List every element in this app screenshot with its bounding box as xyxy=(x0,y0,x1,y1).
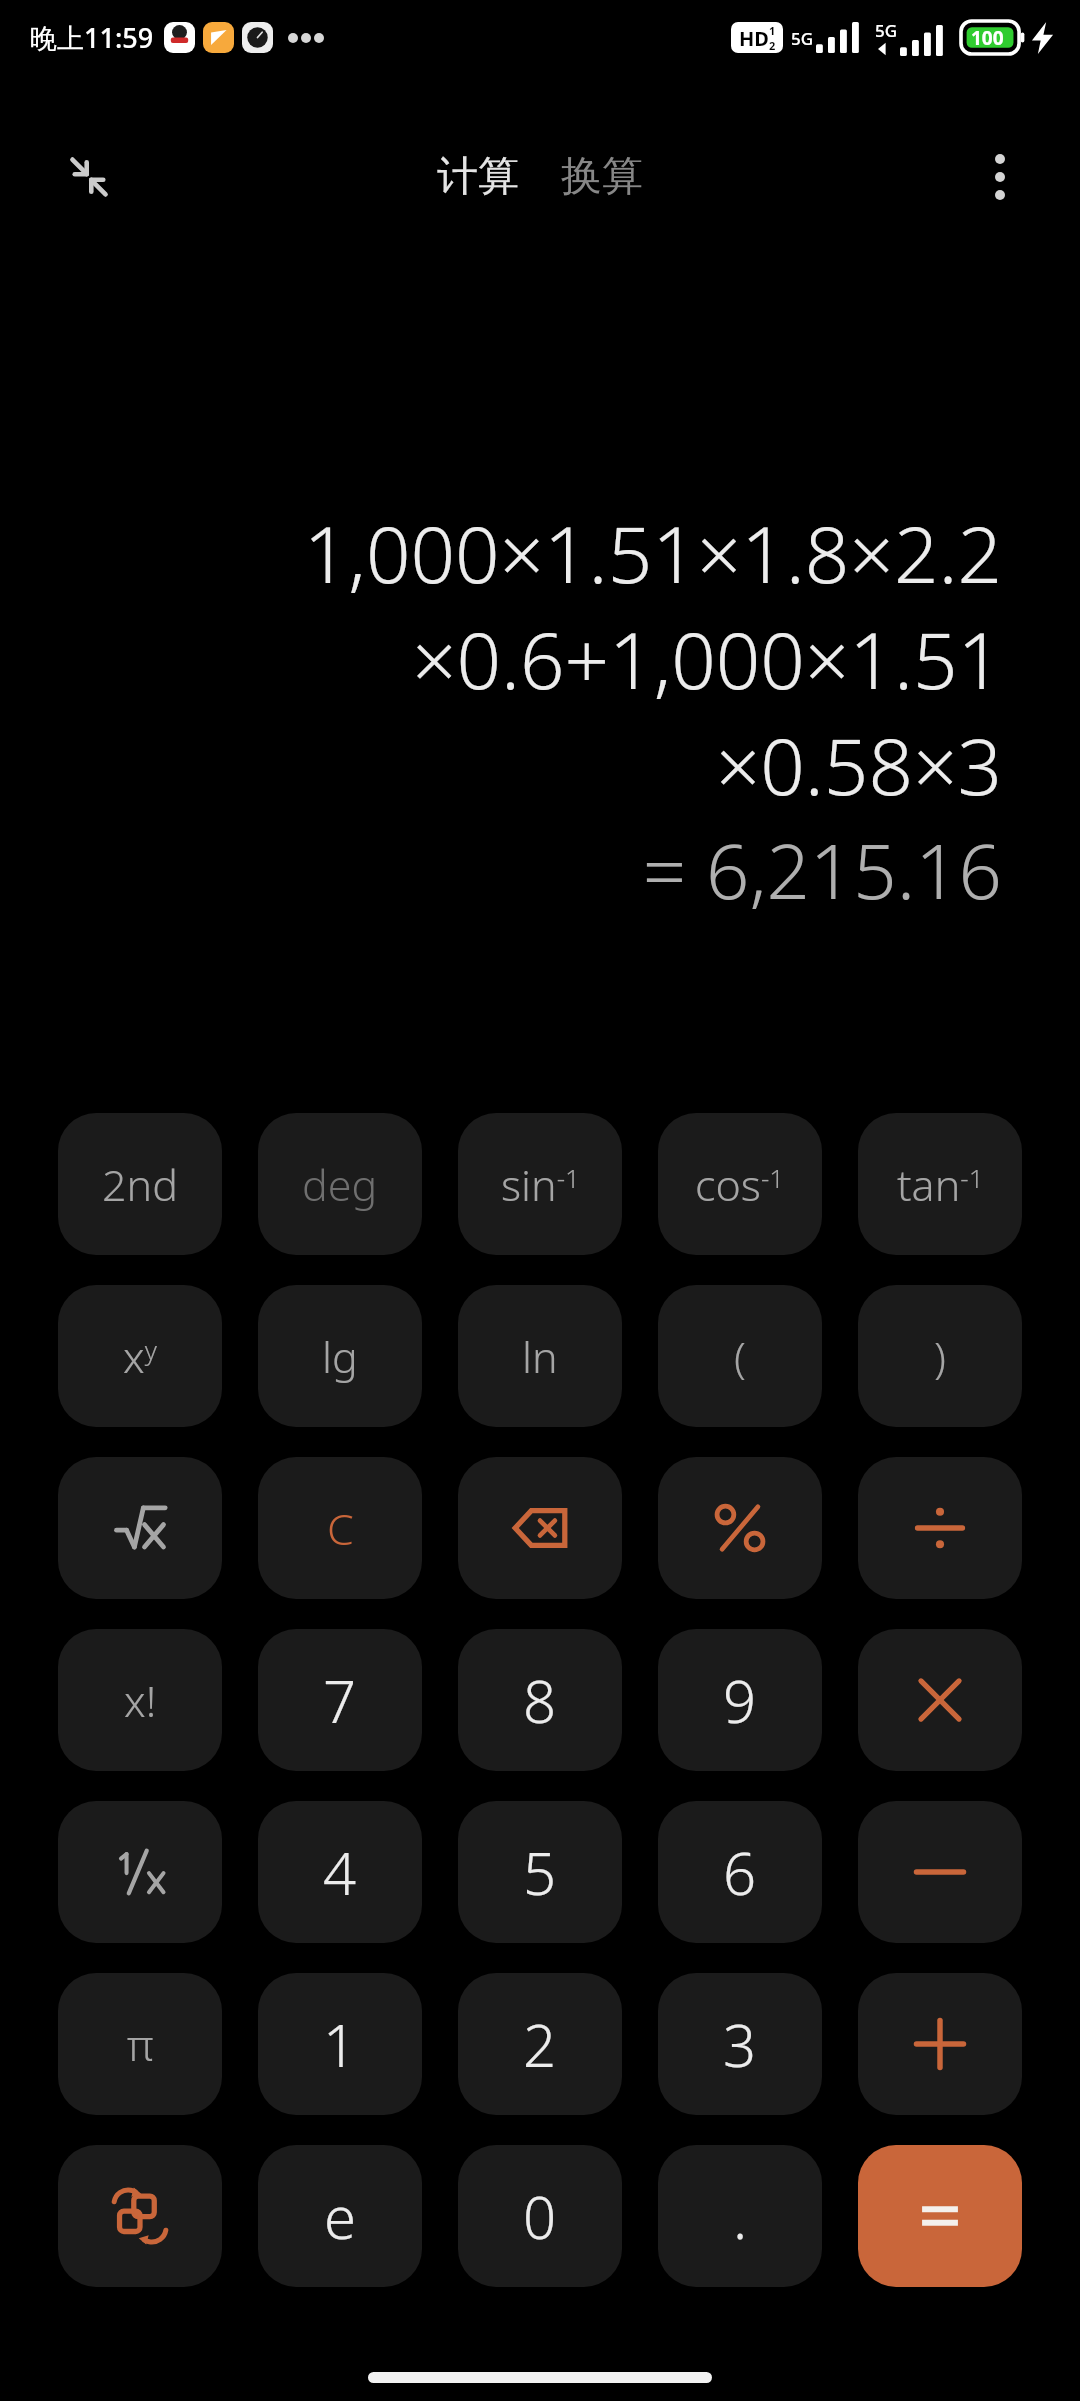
button[interactable]: Multiply xyxy=(858,1629,1022,1771)
staticText: 100 xyxy=(971,25,1004,51)
button[interactable]: sin-1 xyxy=(458,1113,622,1255)
button[interactable]: cos-1 xyxy=(658,1113,822,1255)
staticText: 6 xyxy=(723,1833,757,1912)
button[interactable]: Square root xyxy=(58,1457,222,1599)
button[interactable]: 计算 xyxy=(421,141,535,213)
staticText: e xyxy=(324,2177,357,2256)
button[interactable]: 5 xyxy=(458,1801,622,1943)
button[interactable]: Convert xyxy=(58,2145,222,2287)
staticText: π xyxy=(127,2015,154,2074)
staticText: x! xyxy=(124,1671,157,1730)
button[interactable]: Divide xyxy=(858,1457,1022,1599)
button[interactable]: ln xyxy=(458,1285,622,1427)
button[interactable]: 6 xyxy=(658,1801,822,1943)
staticText: ×0.58×3 xyxy=(715,712,1002,818)
staticText: 计算 xyxy=(437,151,519,203)
staticText: 1 xyxy=(769,23,776,38)
staticText: 8 xyxy=(523,1661,557,1740)
staticText: 0 xyxy=(523,2177,557,2256)
button[interactable]: 2 xyxy=(458,1973,622,2115)
staticText: 5 xyxy=(523,1833,557,1912)
button[interactable]: Backspace xyxy=(458,1457,622,1599)
button[interactable]: 2nd xyxy=(58,1113,222,1255)
button[interactable]: 7 xyxy=(258,1629,422,1771)
staticText: 2nd xyxy=(102,1155,178,1214)
staticText: ) xyxy=(934,1327,946,1386)
button[interactable]: 8 xyxy=(458,1629,622,1771)
button[interactable]: Collapse xyxy=(52,140,126,214)
staticText: 2 xyxy=(769,38,776,53)
staticText: cos-1 xyxy=(695,1155,785,1214)
button[interactable]: 0 xyxy=(458,2145,622,2287)
staticText: C xyxy=(327,1499,354,1558)
staticText: 3 xyxy=(723,2005,757,2084)
staticText: 5G xyxy=(875,19,898,42)
button[interactable]: Plus xyxy=(858,1973,1022,2115)
button[interactable]: 1 xyxy=(258,1973,422,2115)
button[interactable]: lg xyxy=(258,1285,422,1427)
button[interactable]: . xyxy=(658,2145,822,2287)
staticText: = 6,215.16 xyxy=(642,818,1002,922)
button[interactable]: deg xyxy=(258,1113,422,1255)
staticText: tan-1 xyxy=(897,1155,984,1214)
button[interactable]: 9 xyxy=(658,1629,822,1771)
button[interactable]: e xyxy=(258,2145,422,2287)
staticText: xy xyxy=(123,1327,157,1386)
button[interactable]: More options xyxy=(964,141,1036,213)
button[interactable]: Percent xyxy=(658,1457,822,1599)
button[interactable]: Minus xyxy=(858,1801,1022,1943)
staticText: 晚上11:59 xyxy=(30,19,154,56)
button[interactable]: Equals xyxy=(858,2145,1022,2287)
button[interactable]: tan-1 xyxy=(858,1113,1022,1255)
staticText: 7 xyxy=(323,1661,357,1740)
staticText: ( xyxy=(734,1327,746,1386)
button[interactable]: xy xyxy=(58,1285,222,1427)
staticText: HD xyxy=(739,25,769,52)
button[interactable]: ( xyxy=(658,1285,822,1427)
staticText: 9 xyxy=(723,1661,757,1740)
staticText: deg xyxy=(302,1155,378,1214)
staticText: lg xyxy=(322,1327,358,1386)
button[interactable]: ) xyxy=(858,1285,1022,1427)
button[interactable]: 3 xyxy=(658,1973,822,2115)
staticText: ×0.6+1,000×1.51 xyxy=(411,606,1002,712)
staticText: 5G xyxy=(791,27,814,50)
staticText: . xyxy=(733,2177,748,2256)
staticText: 1,000×1.51×1.8×2.2 xyxy=(303,500,1002,606)
button[interactable]: Reciprocal xyxy=(58,1801,222,1943)
staticText: sin-1 xyxy=(501,1155,580,1214)
staticText: ln xyxy=(522,1327,558,1386)
staticText: 2 xyxy=(523,2005,557,2084)
button[interactable]: 4 xyxy=(258,1801,422,1943)
staticText: 换算 xyxy=(561,151,643,203)
staticText: 4 xyxy=(323,1833,357,1912)
button[interactable]: π xyxy=(58,1973,222,2115)
button[interactable]: C xyxy=(258,1457,422,1599)
button[interactable]: 换算 xyxy=(545,141,659,213)
button[interactable]: x! xyxy=(58,1629,222,1771)
staticText: 1 xyxy=(323,2005,357,2084)
